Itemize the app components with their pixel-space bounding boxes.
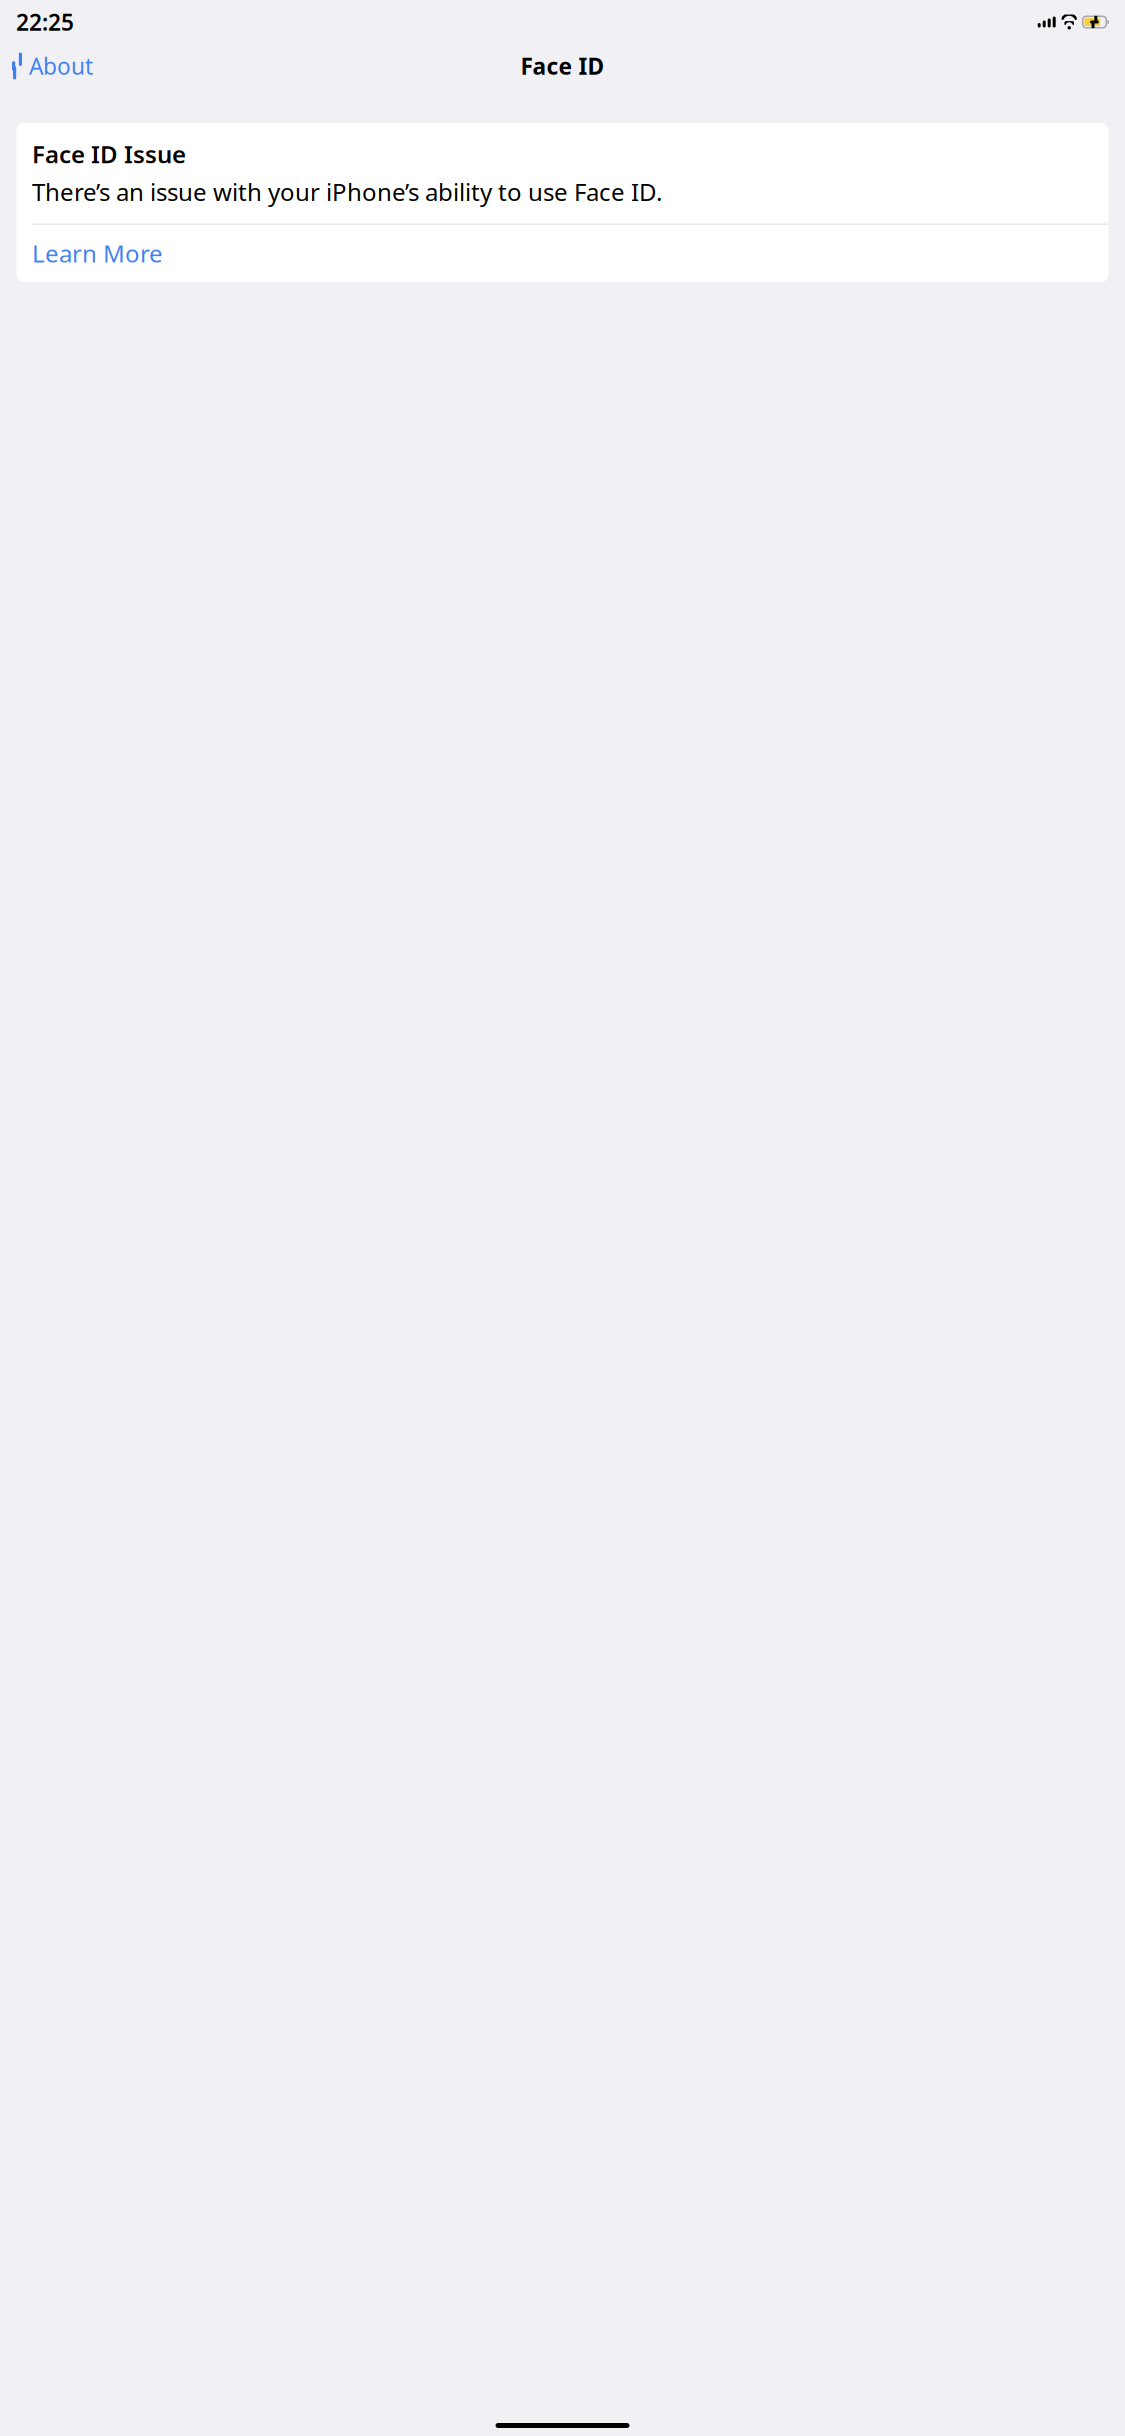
staticText: There’s an issue with your iPhone’s abil… [32, 176, 662, 208]
staticText: Face ID Issue [32, 138, 186, 170]
staticText: About [29, 51, 93, 81]
button[interactable]: About [4, 45, 101, 87]
staticText: 22:25 [16, 7, 74, 37]
staticText: Face ID [520, 51, 604, 81]
button[interactable]: Learn More [16, 224, 1108, 282]
staticText: Learn More [32, 237, 163, 269]
